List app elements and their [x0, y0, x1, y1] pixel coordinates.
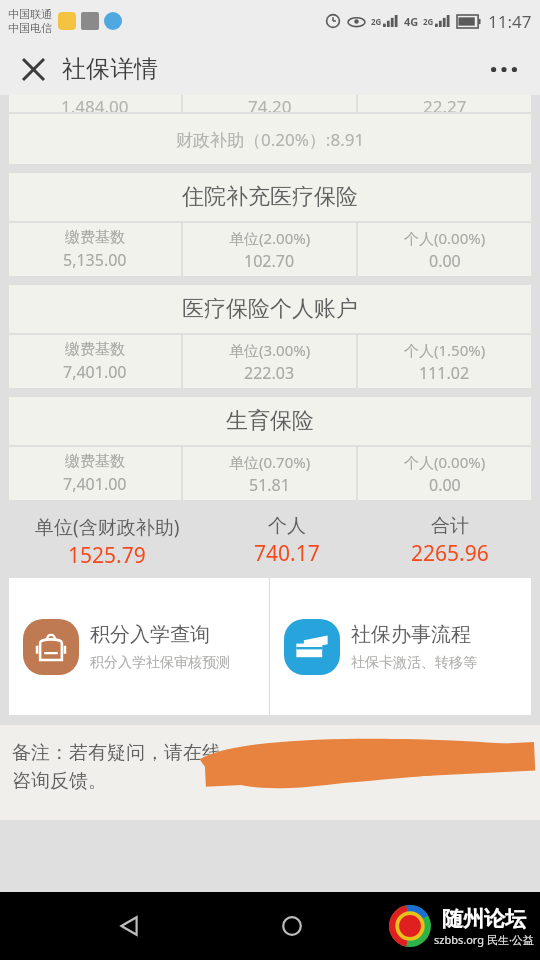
staticText: 生育保险: [226, 407, 314, 435]
staticText: 1525.79: [68, 541, 146, 568]
button[interactable]: 社保办事流程: [270, 578, 531, 715]
staticText: 0.00: [429, 250, 461, 272]
staticText: 积分入学查询: [90, 622, 210, 647]
button[interactable]: More options: [484, 49, 524, 89]
staticText: 2G: [423, 16, 434, 27]
staticText: 222.03: [244, 362, 295, 384]
staticText: 社保详情: [62, 54, 158, 84]
staticText: 0.00: [429, 474, 461, 496]
staticText: 111.02: [419, 362, 470, 384]
staticText: 单位(3.00%): [229, 340, 311, 360]
staticText: 2G: [371, 16, 382, 27]
staticText: 102.70: [244, 250, 295, 272]
staticText: 缴费基数: [65, 340, 125, 359]
staticText: 51.81: [249, 474, 290, 496]
staticText: 中国电信: [8, 21, 52, 35]
button[interactable]: Home: [268, 902, 316, 950]
staticText: 积分入学社保审核预测: [90, 654, 230, 672]
staticText: 单位(2.00%): [229, 228, 311, 248]
staticText: 5,135.00: [63, 249, 127, 271]
staticText: 740.17: [254, 539, 320, 568]
staticText: 缴费基数: [65, 452, 125, 471]
staticText: 医疗保险个人账户: [182, 295, 358, 323]
staticText: 2265.96: [411, 539, 489, 568]
staticText: 咨询反馈。: [12, 769, 107, 793]
staticText: 社保卡激活、转移等: [351, 654, 477, 672]
staticText: 4G: [404, 14, 419, 29]
staticText: szbbs.org 民生·公益: [434, 932, 534, 947]
staticText: 单位(含财政补助): [35, 514, 180, 540]
staticText: 22.27: [423, 95, 467, 112]
staticText: 个人: [268, 514, 306, 538]
staticText: 7,401.00: [63, 361, 127, 383]
staticText: 备注：若有疑问，请在线: [12, 741, 221, 765]
staticText: 个人(0.00%): [404, 452, 486, 472]
staticText: 缴费基数: [65, 228, 125, 247]
staticText: 个人(1.50%): [404, 340, 486, 360]
button[interactable]: Close: [16, 52, 50, 86]
staticText: 个人(0.00%): [404, 228, 486, 248]
staticText: 住院补充医疗保险: [182, 183, 358, 211]
staticText: 74.20: [248, 95, 292, 112]
button[interactable]: Back: [105, 902, 153, 950]
staticText: 7,401.00: [63, 473, 127, 495]
staticText: 合计: [431, 514, 469, 538]
staticText: 随州论坛: [442, 906, 526, 932]
staticText: 社保办事流程: [351, 622, 471, 647]
staticText: 单位(0.70%): [229, 452, 311, 472]
button[interactable]: 积分入学查询: [9, 578, 269, 715]
staticText: 11:47: [488, 10, 532, 33]
staticText: 1,484.00: [61, 95, 129, 112]
staticText: 财政补助（0.20%）:8.91: [176, 128, 365, 151]
staticText: 中国联通: [8, 7, 52, 21]
